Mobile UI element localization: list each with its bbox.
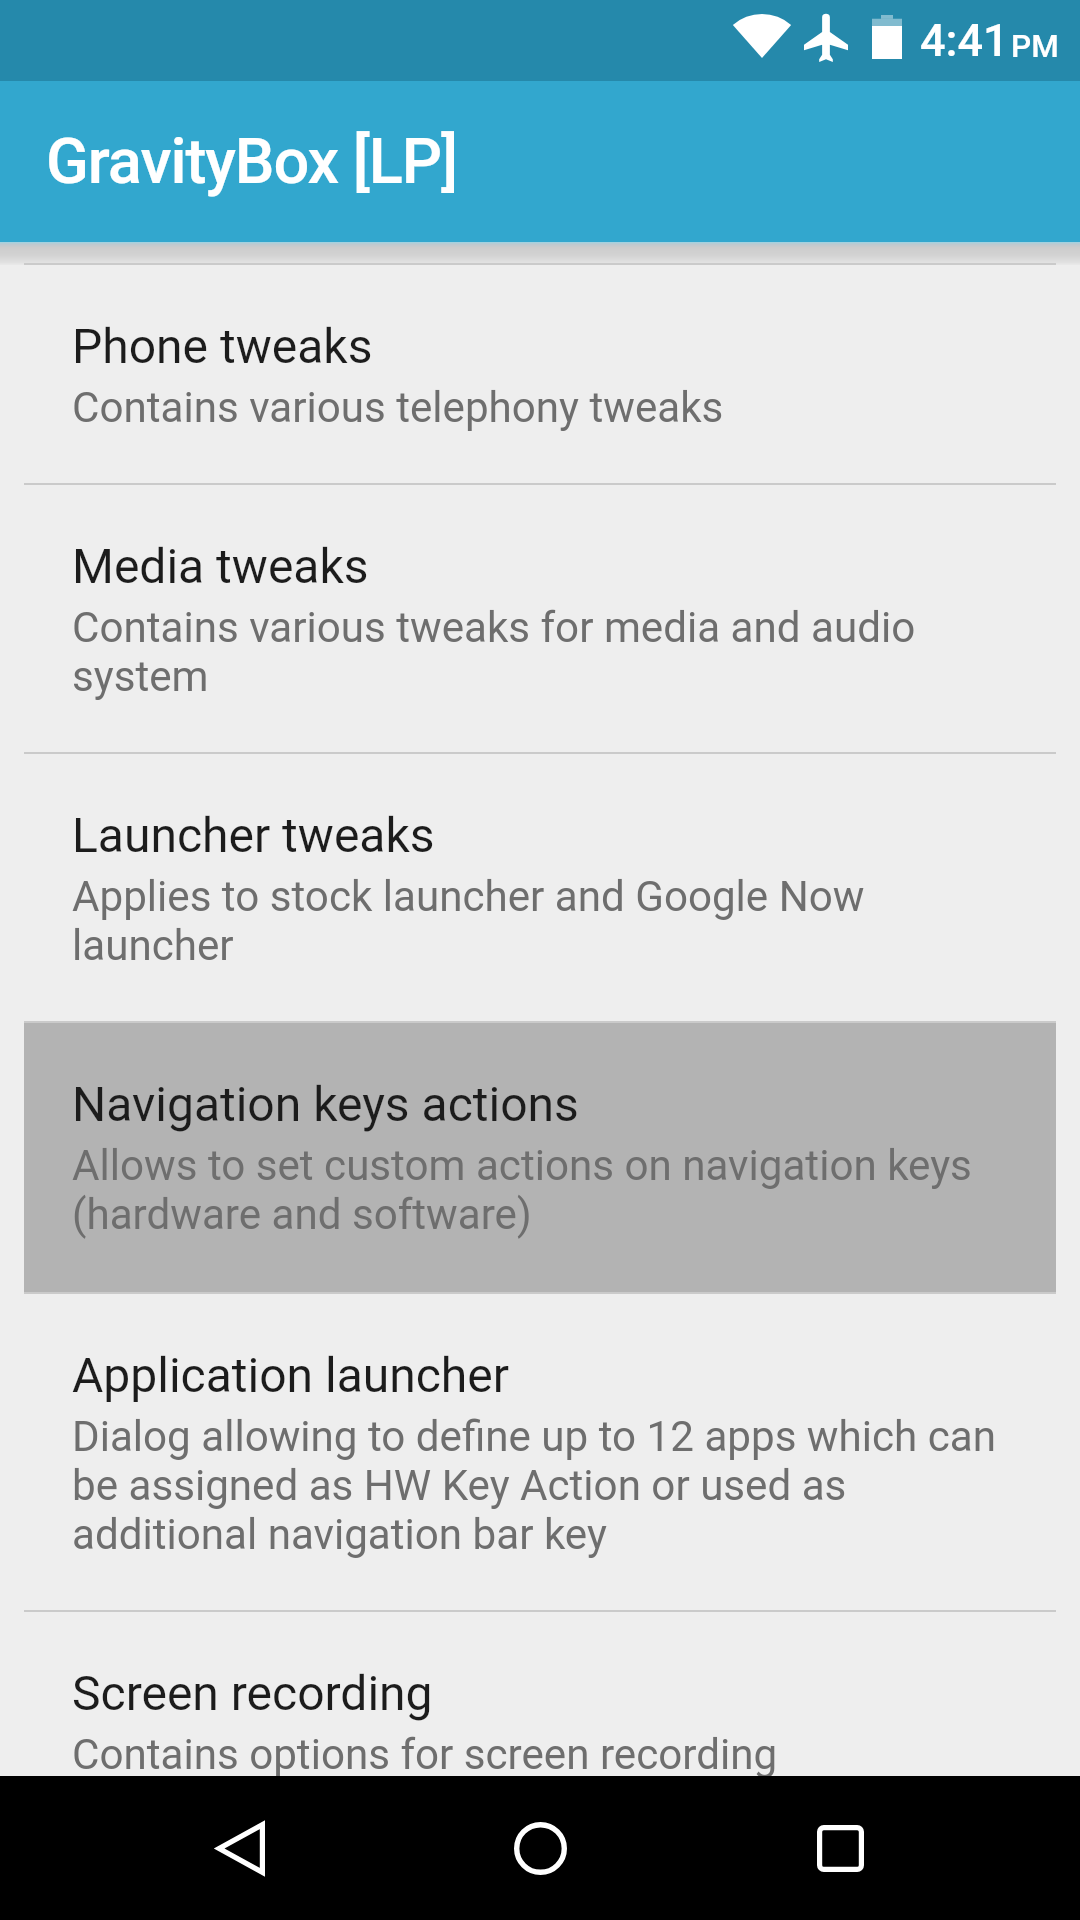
button[interactable]: Media tweaks bbox=[0, 485, 1080, 752]
staticText: Navigation keys actions bbox=[72, 1076, 579, 1132]
staticText: Applies to stock launcher and Google Now… bbox=[72, 872, 1008, 970]
button[interactable]: Back bbox=[0, 1776, 480, 1920]
staticText: Launcher tweaks bbox=[72, 807, 435, 863]
button[interactable]: Home bbox=[480, 1776, 600, 1920]
staticText: Screen recording bbox=[72, 1665, 433, 1721]
staticText: Phone tweaks bbox=[72, 318, 373, 374]
staticText: Dialog allowing to define up to 12 apps … bbox=[72, 1412, 1008, 1559]
staticText: Contains various tweaks for media and au… bbox=[72, 603, 1008, 701]
staticText: Application launcher bbox=[72, 1347, 509, 1403]
staticText: Contains options for screen recording bbox=[72, 1730, 778, 1776]
staticText: GravityBox [LP] bbox=[46, 125, 458, 199]
button[interactable]: Application launcher bbox=[0, 1294, 1080, 1610]
staticText: Allows to set custom actions on navigati… bbox=[72, 1141, 1008, 1239]
staticText: PM bbox=[1011, 28, 1059, 65]
button[interactable]: Recent apps bbox=[600, 1776, 1080, 1920]
button[interactable]: Screen recording bbox=[0, 1612, 1080, 1776]
button[interactable]: Launcher tweaks bbox=[0, 754, 1080, 1021]
staticText: Media tweaks bbox=[72, 538, 369, 594]
button[interactable]: Navigation keys actions bbox=[0, 1023, 1080, 1292]
staticText: 4:41 bbox=[920, 14, 1009, 67]
staticText: Contains various telephony tweaks bbox=[72, 383, 724, 432]
button[interactable]: Phone tweaks bbox=[0, 265, 1080, 483]
